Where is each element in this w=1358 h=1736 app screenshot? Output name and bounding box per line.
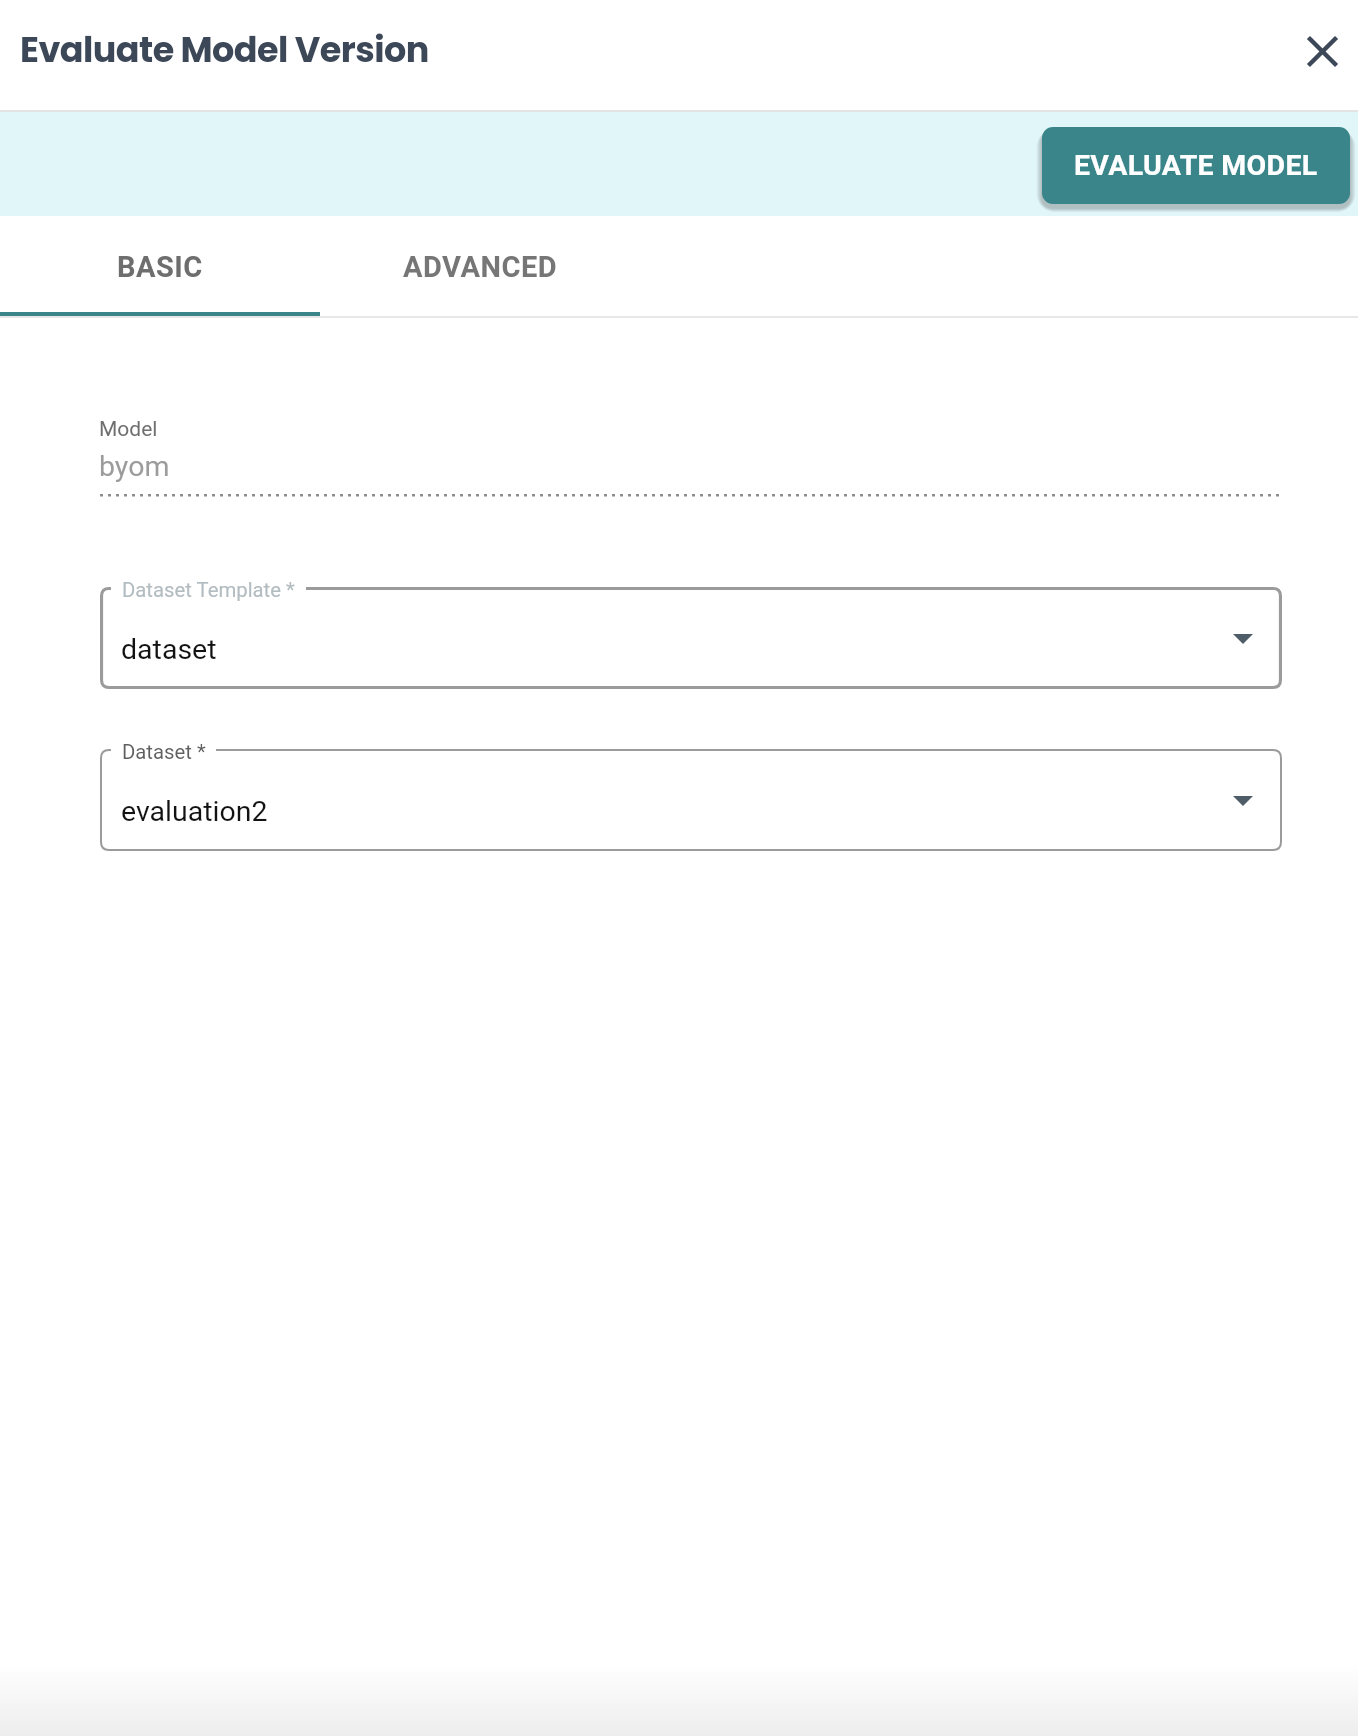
staticText: BASIC	[117, 250, 203, 284]
staticText: evaluation2	[121, 795, 268, 828]
staticText: Model	[99, 417, 158, 442]
staticText: Evaluate Model Version	[20, 25, 429, 74]
staticText: Dataset Template *	[122, 578, 295, 602]
staticText: EVALUATE MODEL	[1074, 149, 1318, 182]
button[interactable]: Close	[1288, 17, 1356, 85]
staticText: Dataset *	[122, 740, 206, 764]
button[interactable]: ADVANCED	[320, 217, 640, 317]
button[interactable]: BASIC	[0, 217, 320, 317]
staticText: dataset	[121, 633, 217, 666]
button[interactable]: Dataset *	[100, 749, 1282, 851]
button[interactable]: Dataset Template *	[100, 587, 1282, 689]
button[interactable]: EVALUATE MODEL	[1042, 127, 1350, 204]
staticText: ADVANCED	[403, 250, 558, 284]
staticText: byom	[99, 450, 170, 483]
